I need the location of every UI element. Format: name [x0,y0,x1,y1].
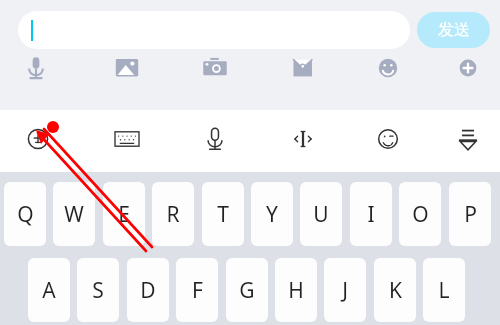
staticText: I [367,200,375,229]
button[interactable]: Voice input [197,121,233,157]
staticText: A [42,276,56,305]
button[interactable]: R [152,182,194,246]
button[interactable]: Y [251,182,293,246]
button[interactable]: O [399,182,441,246]
staticText: D [140,276,156,305]
staticText: U [313,200,329,229]
button[interactable]: 发送 [417,12,490,48]
staticText: R [166,200,180,229]
button[interactable]: L [423,258,465,322]
staticText: K [389,276,402,305]
button[interactable]: Emoji [371,51,405,85]
staticText: L [438,276,450,305]
button[interactable]: Emoji [370,121,406,157]
button[interactable]: U [300,182,342,246]
staticText: P [464,200,477,229]
button[interactable]: Voice message [19,51,53,85]
button[interactable]: K [374,258,416,322]
button[interactable]: T [202,182,244,246]
button[interactable]: E [103,182,145,246]
button[interactable]: S [77,258,119,322]
button[interactable]: More [451,51,485,85]
button[interactable]: Mail [286,51,320,85]
button[interactable]: Input method [20,121,56,157]
staticText: J [342,276,348,305]
staticText: O [412,200,429,229]
button[interactable]: Move cursor [285,121,321,157]
staticText: T [217,200,229,229]
button[interactable]: G [226,258,268,322]
button[interactable]: F [176,258,218,322]
button[interactable]: Hide keyboard [450,121,486,157]
button[interactable]: Keyboard [109,121,145,157]
button[interactable]: H [275,258,317,322]
button[interactable]: Camera [198,51,232,85]
button[interactable]: W [53,182,95,246]
staticText: G [239,276,255,305]
staticText: 发送 [438,20,470,40]
button[interactable]: J [324,258,366,322]
staticText: H [288,276,304,305]
button[interactable]: P [449,182,491,246]
staticText: W [64,200,84,229]
staticText: Y [266,200,278,229]
button[interactable]: Photo [110,51,144,85]
staticText: E [118,200,130,229]
button[interactable]: D [127,258,169,322]
button[interactable]: I [350,182,392,246]
staticText: F [192,276,203,305]
staticText: Q [17,200,34,229]
staticText: S [92,276,104,305]
button[interactable]: Q [4,182,46,246]
button[interactable] [18,11,410,49]
button[interactable]: A [28,258,70,322]
